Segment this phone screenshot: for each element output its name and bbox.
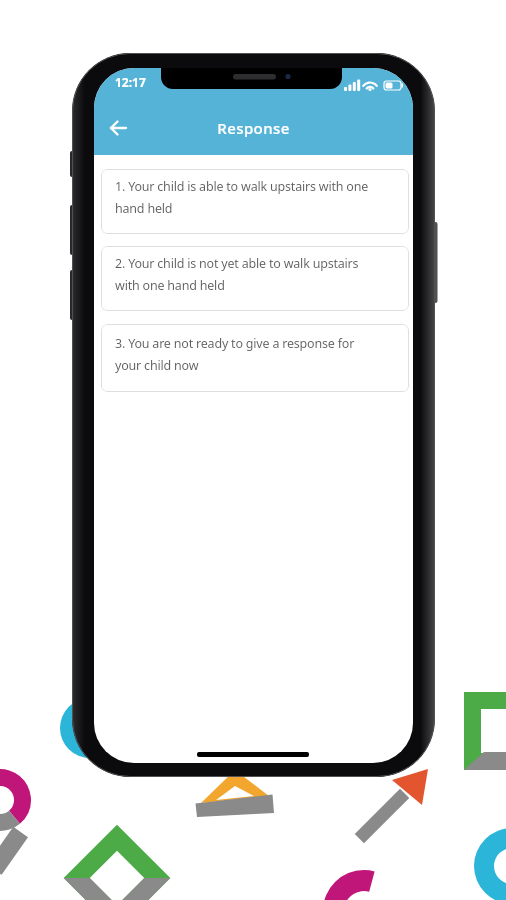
staticText: 2. Your child is not yet able to walk up… <box>115 255 359 294</box>
staticText: 3. You are not ready to give a response … <box>115 335 355 374</box>
staticText: 1. Your child is able to walk upstairs w… <box>115 178 369 217</box>
button[interactable]: 3. You are not ready to give a response … <box>101 324 409 392</box>
button[interactable]: 1. Your child is able to walk upstairs w… <box>101 169 409 234</box>
button[interactable] <box>102 112 136 144</box>
staticText: 12:17 <box>115 74 146 90</box>
button[interactable]: 2. Your child is not yet able to walk up… <box>101 246 409 311</box>
staticText: Response <box>94 118 413 138</box>
